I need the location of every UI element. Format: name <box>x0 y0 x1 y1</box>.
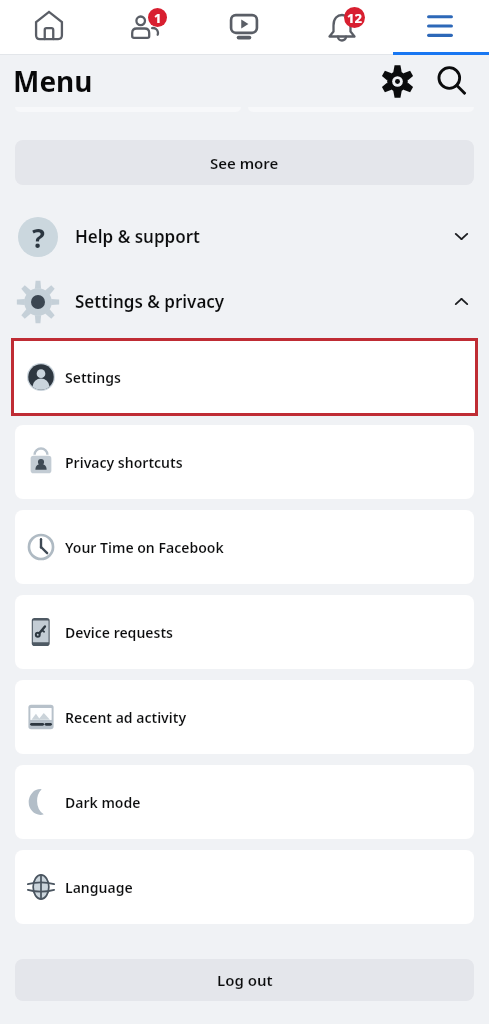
staticText: ? <box>32 219 45 256</box>
staticText: 1 <box>154 9 162 27</box>
staticText: Dark mode <box>65 793 141 812</box>
staticText: Log out <box>217 970 273 990</box>
button[interactable]: Search <box>433 62 471 100</box>
button[interactable]: Home <box>0 0 97 52</box>
staticText: Help & support <box>75 225 201 248</box>
button[interactable]: Menu <box>391 0 489 52</box>
button[interactable]: Settings <box>11 338 478 416</box>
staticText: Privacy shortcuts <box>65 453 183 472</box>
staticText: Settings <box>65 368 121 387</box>
staticText: 12 <box>347 9 362 27</box>
staticText: Your Time on Facebook <box>65 538 224 557</box>
staticText: Recent ad activity <box>65 708 187 727</box>
staticText: Language <box>65 878 133 897</box>
button[interactable]: ? <box>0 204 489 269</box>
staticText: Device requests <box>65 623 173 642</box>
staticText: Menu <box>13 62 93 100</box>
button[interactable]: Video <box>195 0 293 52</box>
button[interactable]: Log out <box>15 959 474 1001</box>
button[interactable]: Dark mode <box>15 765 474 839</box>
button[interactable]: Settings <box>377 61 417 101</box>
button[interactable]: Device requests <box>15 595 474 669</box>
button[interactable]: Privacy shortcuts <box>15 425 474 499</box>
button[interactable]: See more <box>15 140 474 185</box>
button[interactable]: Settings & privacy <box>0 269 489 334</box>
button[interactable]: Language <box>15 850 474 924</box>
button[interactable]: Friend requests <box>97 0 195 52</box>
button[interactable]: Recent ad activity <box>15 680 474 754</box>
button[interactable]: Notifications <box>293 0 391 52</box>
button[interactable]: Your Time on Facebook <box>15 510 474 584</box>
staticText: Settings & privacy <box>75 290 225 313</box>
staticText: See more <box>210 153 279 173</box>
